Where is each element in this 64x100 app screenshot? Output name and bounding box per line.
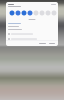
button[interactable]: AirDrop [9, 10, 15, 16]
button[interactable]: Copy [51, 10, 57, 16]
button[interactable]: Reminders [33, 10, 39, 16]
button[interactable]: Files [39, 10, 45, 16]
button[interactable]: More [45, 10, 51, 16]
button[interactable]: Share [49, 43, 55, 44]
button[interactable]: Mail [21, 10, 27, 16]
button[interactable]: Done [51, 4, 56, 5]
button[interactable]: Cancel [39, 43, 46, 44]
button[interactable]: Notes [27, 10, 33, 16]
button[interactable]: Messages [15, 10, 21, 16]
